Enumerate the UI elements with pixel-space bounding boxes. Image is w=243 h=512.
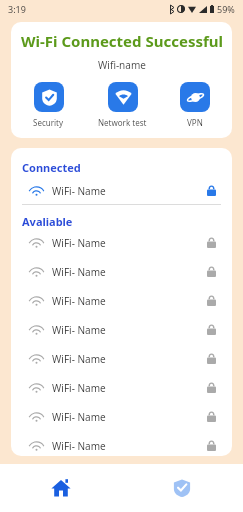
- button[interactable]: Home: [0, 464, 121, 512]
- button[interactable]: WiFi- Name: [22, 406, 221, 427]
- staticText: Avaliable: [22, 214, 73, 229]
- staticText: WiFi- Name: [52, 410, 106, 424]
- staticText: 3:19: [8, 3, 26, 15]
- staticText: WiFi- Name: [52, 439, 106, 453]
- button[interactable]: WiFi- Name: [22, 377, 221, 398]
- staticText: VPN: [187, 117, 203, 128]
- button[interactable]: VPN: [180, 82, 210, 128]
- staticText: WiFi- Name: [52, 236, 106, 250]
- button[interactable]: WiFi- Name: [22, 435, 221, 456]
- button[interactable]: WiFi- Name: [22, 319, 221, 340]
- button[interactable]: WiFi- Name: [22, 261, 221, 282]
- staticText: Security: [33, 117, 64, 128]
- staticText: WiFi- Name: [52, 184, 106, 198]
- staticText: Connected: [22, 160, 81, 175]
- button[interactable]: WiFi- Name: [22, 348, 221, 369]
- staticText: Wifi-name: [98, 58, 146, 72]
- staticText: WiFi- Name: [52, 381, 106, 395]
- staticText: WiFi- Name: [52, 352, 106, 366]
- staticText: Wi-Fi Connected Successful: [21, 31, 223, 51]
- button[interactable]: Security: [33, 82, 64, 128]
- staticText: 59%: [217, 3, 235, 15]
- button[interactable]: Security: [121, 464, 243, 512]
- button[interactable]: WiFi- Name: [22, 232, 221, 253]
- staticText: WiFi- Name: [52, 323, 106, 337]
- staticText: Network test: [98, 117, 147, 128]
- staticText: WiFi- Name: [52, 294, 106, 308]
- button[interactable]: WiFi- Name: [22, 180, 221, 201]
- button[interactable]: WiFi- Name: [22, 290, 221, 311]
- staticText: WiFi- Name: [52, 265, 106, 279]
- button[interactable]: Network test: [98, 82, 147, 128]
